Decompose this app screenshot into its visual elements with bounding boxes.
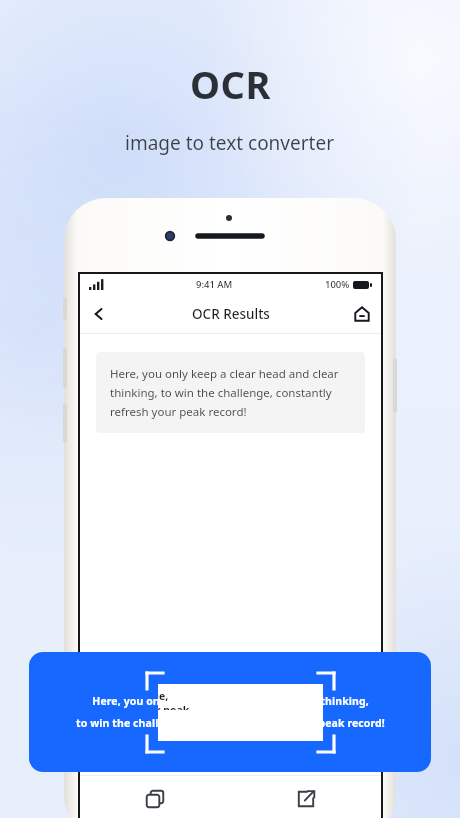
staticText: to win the challenge, constantly refresh… xyxy=(158,689,195,710)
staticText: OCR xyxy=(190,58,271,110)
button[interactable]: Back xyxy=(80,295,118,333)
staticText: OCR Results xyxy=(192,305,270,323)
button[interactable]: Home xyxy=(343,295,381,333)
staticText: Here, you only keep a clear head and cle… xyxy=(110,366,351,419)
staticText: image to text converter xyxy=(125,130,335,156)
button[interactable]: Here, you only keep a clear head and cle… xyxy=(29,652,431,772)
staticText: 9:41 AM xyxy=(196,278,233,291)
button[interactable]: Here, you only keep a clear head and cle… xyxy=(96,352,365,433)
staticText: Here, you only keep a clear head and cle… xyxy=(92,694,369,708)
button[interactable]: Share xyxy=(230,776,381,818)
button[interactable]: Copy text xyxy=(80,776,230,818)
staticText: 100% xyxy=(325,278,350,291)
staticText: to win the challenge, constantly refresh… xyxy=(76,716,385,730)
